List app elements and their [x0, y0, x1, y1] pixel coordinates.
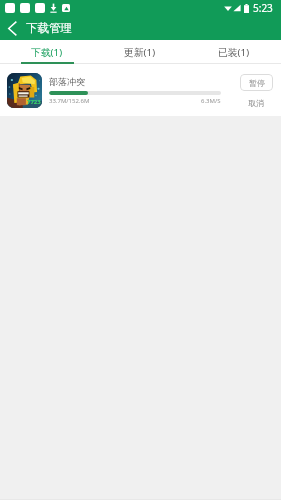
button[interactable]: Back: [0, 16, 24, 40]
staticText: 下载(1): [31, 46, 63, 59]
staticText: 已装(1): [218, 46, 250, 59]
button[interactable]: 更新(1): [93, 40, 187, 64]
staticText: 7723: [27, 98, 41, 106]
button[interactable]: 暂停: [240, 74, 273, 91]
button[interactable]: 取消: [248, 98, 264, 108]
staticText: 取消: [248, 98, 264, 108]
staticText: 6.3M/S: [201, 97, 221, 105]
staticText: 部落冲突: [49, 76, 85, 87]
staticText: 更新(1): [124, 46, 156, 59]
button[interactable]: 7723: [0, 64, 281, 116]
staticText: 33.7M/152.6M: [49, 97, 90, 105]
button[interactable]: 已装(1): [187, 40, 281, 64]
staticText: 下载管理: [26, 21, 72, 35]
staticText: 暂停: [249, 78, 265, 88]
staticText: 5:23: [253, 1, 273, 15]
button[interactable]: 下载(1): [0, 40, 93, 64]
